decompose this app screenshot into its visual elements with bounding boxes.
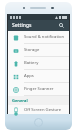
staticText: Battery xyxy=(24,60,39,66)
button[interactable]: Off Screen Gesture xyxy=(8,105,69,114)
button[interactable]: Search xyxy=(57,21,66,30)
staticText: General xyxy=(12,98,28,103)
button[interactable]: Apps xyxy=(8,70,69,83)
button[interactable]: Sound & notification xyxy=(8,31,69,44)
button[interactable]: Finger Scanner xyxy=(8,83,69,96)
staticText: Sound & notification xyxy=(24,34,65,40)
button[interactable]: Storage xyxy=(8,44,69,57)
staticText: Storage xyxy=(24,47,40,53)
staticText: Settings xyxy=(12,22,32,29)
button[interactable]: Battery xyxy=(8,57,69,70)
staticText: Off Screen Gesture xyxy=(24,107,62,113)
staticText: Apps xyxy=(24,73,34,79)
staticText: Finger Scanner xyxy=(24,86,54,92)
